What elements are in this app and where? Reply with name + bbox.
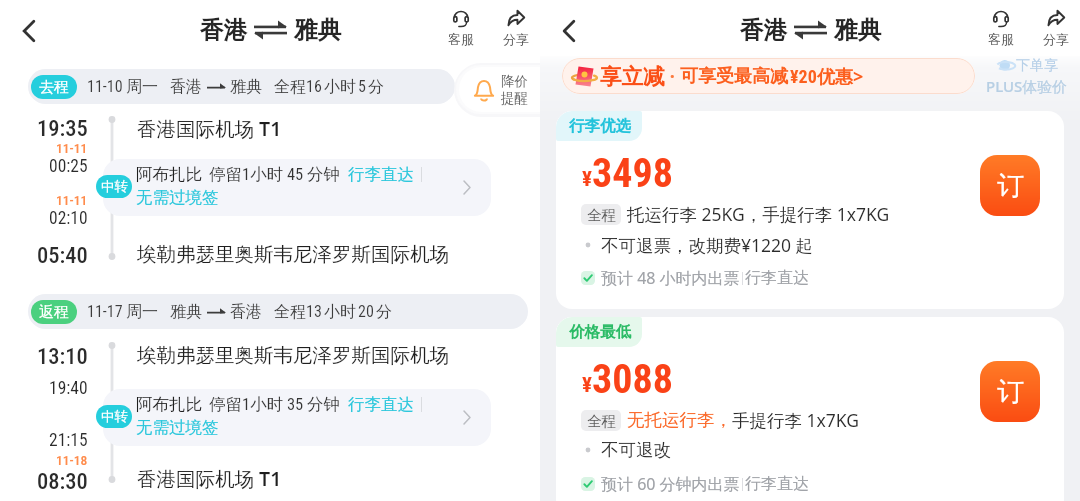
staticText: 05:40	[37, 242, 88, 268]
button[interactable]: 客服	[978, 9, 1024, 47]
staticText: 不可退改	[601, 439, 671, 461]
staticText: 香港国际机场 T1	[137, 115, 282, 142]
staticText: 客服	[988, 31, 1014, 47]
staticText: 11-10	[87, 77, 123, 96]
staticText: 中转	[101, 178, 128, 195]
staticText: 埃勒弗瑟里奥斯韦尼泽罗斯国际机场	[137, 343, 449, 368]
staticText: 无需过境签	[136, 187, 219, 208]
staticText: 返程	[39, 303, 69, 322]
staticText: 价格最低	[569, 322, 631, 342]
staticText: 13	[306, 302, 322, 321]
staticText: 雅典	[834, 15, 881, 45]
staticText: 19:35	[37, 115, 88, 141]
staticText: ·	[665, 64, 680, 89]
staticText: 不可退票，改期费¥1220 起	[601, 233, 814, 257]
staticText: 分享	[1043, 31, 1069, 47]
staticText: 小时	[324, 302, 356, 322]
staticText: 阿布扎比	[136, 394, 202, 415]
staticText: 20	[358, 302, 374, 321]
staticText: 周一	[126, 77, 158, 97]
staticText: 停留	[209, 394, 242, 415]
staticText: 行李直达	[348, 394, 414, 415]
button[interactable]: 降价	[459, 67, 544, 112]
staticText: 下单享	[1016, 57, 1058, 75]
staticText: 埃勒弗瑟里奥斯韦尼泽罗斯国际机场	[137, 242, 449, 267]
staticText: 雅典	[230, 77, 262, 97]
button[interactable]: 分享	[493, 9, 539, 47]
staticText: 享立减	[600, 63, 665, 90]
staticText: 优惠>	[817, 64, 864, 89]
button[interactable]: Back	[549, 11, 589, 51]
staticText: 5	[358, 77, 366, 96]
staticText: 香港	[200, 15, 247, 45]
button[interactable]: 分享	[1033, 9, 1079, 47]
staticText: 02:10	[49, 208, 88, 229]
staticText: 全程	[587, 412, 616, 430]
button[interactable]: 客服	[438, 9, 484, 47]
staticText: 行李优选	[569, 116, 631, 136]
staticText: 订	[997, 375, 1024, 409]
staticText: 11-18	[56, 452, 88, 468]
staticText: 香港	[740, 15, 787, 45]
button[interactable]: 返程	[28, 294, 528, 329]
staticText: 分	[376, 302, 392, 322]
staticText: 21:15	[49, 430, 88, 451]
staticText: 雅典	[294, 15, 341, 45]
staticText: ¥	[582, 167, 592, 192]
staticText: 行李直达	[745, 474, 809, 494]
staticText: 手提行李 1x7KG	[732, 408, 860, 432]
button[interactable]: 价格最低	[556, 317, 1064, 501]
staticText: 13:10	[37, 343, 88, 369]
button[interactable]: 中转	[96, 159, 491, 216]
staticText: 中转	[101, 408, 128, 425]
staticText: 降价	[501, 73, 528, 90]
staticText: PLUS体验价	[986, 76, 1068, 96]
staticText: 11-17	[87, 302, 123, 321]
staticText: 香港	[230, 302, 262, 322]
staticText: 全程	[274, 302, 306, 322]
staticText: 周一	[126, 302, 158, 322]
staticText: 19:40	[49, 378, 88, 399]
staticText: 订	[997, 169, 1024, 203]
staticText: 香港	[170, 77, 202, 97]
staticText: 08:30	[37, 468, 88, 494]
staticText: 可享受最高减	[680, 65, 788, 88]
button[interactable]: 去程	[28, 69, 455, 104]
staticText: 香港国际机场 T1	[137, 465, 282, 492]
button[interactable]: 享立减	[562, 58, 975, 94]
button[interactable]: 订	[980, 361, 1040, 422]
button[interactable]: Back	[9, 11, 49, 51]
staticText: 阿布扎比	[136, 164, 202, 185]
staticText: 00:25	[49, 156, 88, 177]
staticText: 无托运行李，	[627, 409, 732, 431]
staticText: 托运行李 25KG，手提行李 1x7KG	[627, 202, 890, 226]
staticText: 提醒	[501, 90, 528, 107]
staticText: 16	[306, 77, 322, 96]
staticText: 雅典	[170, 302, 202, 322]
staticText: 无需过境签	[136, 417, 219, 438]
staticText: 3088	[592, 356, 673, 403]
staticText: 预计 48 小时内出票	[601, 267, 740, 289]
staticText: 1小时 35 分钟	[242, 394, 341, 415]
staticText: 11-11	[56, 192, 88, 208]
staticText: 11-11	[56, 140, 88, 156]
button[interactable]: 中转	[96, 389, 491, 446]
staticText: 3498	[592, 150, 673, 197]
staticText: 行李直达	[348, 164, 414, 185]
staticText: 停留	[209, 164, 242, 185]
staticText: 客服	[448, 31, 474, 47]
staticText: ¥20	[790, 66, 817, 87]
staticText: 全程	[587, 206, 616, 224]
staticText: 分享	[503, 31, 529, 47]
button[interactable]: 订	[980, 155, 1040, 216]
staticText: ¥	[582, 373, 592, 398]
staticText: 去程	[39, 78, 69, 97]
staticText: 分	[368, 77, 384, 97]
staticText: 小时	[324, 77, 356, 97]
staticText: 行李直达	[745, 268, 809, 288]
staticText: 全程	[274, 77, 306, 97]
button[interactable]: 行李优选	[556, 111, 1064, 309]
staticText: 预计 60 分钟内出票	[601, 473, 740, 495]
staticText: 1小时 45 分钟	[242, 164, 341, 185]
